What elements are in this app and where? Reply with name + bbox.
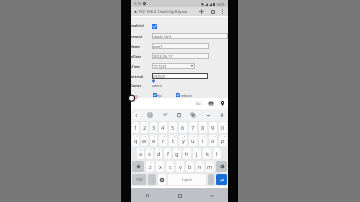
button[interactable]: Voice input	[218, 109, 226, 121]
button[interactable]: s	[146, 148, 153, 159]
button[interactable]: 9	[209, 122, 217, 133]
staticText: y	[182, 137, 185, 145]
staticText: 6	[184, 135, 186, 138]
button[interactable]: n	[196, 161, 204, 172]
staticText: i	[202, 137, 204, 145]
button[interactable]: 17:1231	[152, 63, 195, 69]
button[interactable]: chodi_faj;ji	[152, 33, 228, 39]
staticText: admin	[152, 83, 163, 88]
button[interactable]: Recents	[131, 188, 164, 202]
button[interactable]: r	[159, 135, 167, 146]
button[interactable]: y	[179, 135, 187, 146]
button[interactable]: q	[132, 135, 139, 146]
staticText: x	[159, 163, 162, 171]
staticText: g	[175, 150, 179, 158]
button[interactable]: u	[189, 135, 197, 146]
button[interactable]: Payment methods	[207, 98, 215, 109]
staticText: _	[168, 148, 170, 151]
staticText: ?	[212, 161, 213, 164]
button[interactable]: Translate	[189, 109, 197, 121]
staticText: 8	[204, 135, 206, 138]
button[interactable]: Clipboard	[175, 109, 183, 121]
staticText: q	[134, 137, 138, 145]
staticText: ;	[192, 161, 193, 164]
staticText: 17:1231	[153, 64, 167, 69]
staticText: w	[142, 137, 147, 145]
button[interactable]: More tools	[204, 109, 212, 121]
button[interactable]: z	[146, 161, 154, 172]
button[interactable]: Glu	[196, 98, 201, 109]
button[interactable]: 0	[219, 122, 227, 133]
staticText: sTime	[131, 64, 141, 69]
button[interactable]: t	[169, 135, 177, 146]
button[interactable]: l	[213, 148, 221, 159]
button[interactable]: Enter	[216, 174, 227, 185]
button[interactable]: ,	[148, 174, 156, 185]
staticText: @	[140, 148, 143, 151]
button[interactable]: d	[155, 148, 162, 159]
staticText: 5	[174, 135, 176, 138]
button[interactable]: Emoji	[158, 174, 166, 185]
button[interactable]: 2023-06-17	[152, 53, 209, 59]
button[interactable]: New tab	[196, 7, 207, 16]
button[interactable]: .	[208, 174, 214, 185]
button[interactable]: user1	[152, 43, 209, 49]
button[interactable]: a	[137, 148, 144, 159]
button[interactable]: ftp	[153, 93, 157, 97]
button[interactable]: enabled	[152, 24, 157, 29]
button[interactable]: reboot	[176, 93, 180, 97]
button[interactable]: g	[173, 148, 181, 159]
staticText: f	[167, 150, 169, 158]
button[interactable]: x	[156, 161, 164, 172]
staticText: 0	[224, 135, 226, 138]
button[interactable]: k	[203, 148, 211, 159]
button[interactable]: 7	[189, 122, 197, 133]
button[interactable]: Shift	[132, 161, 144, 172]
button[interactable]: 3	[150, 122, 157, 133]
staticText: !	[202, 161, 203, 164]
staticText: ,	[152, 177, 153, 182]
button[interactable]: Expand toolbar	[133, 112, 140, 119]
staticText: 3	[152, 124, 156, 132]
button[interactable]: w	[141, 135, 148, 146]
button[interactable]: Backspace	[216, 161, 227, 172]
staticText: *	[151, 161, 153, 164]
button[interactable]: GIF	[161, 109, 169, 121]
button[interactable]: 8	[199, 122, 207, 133]
button[interactable]: 4	[159, 122, 167, 133]
staticText: enabled	[131, 23, 144, 28]
staticText: #	[150, 148, 152, 151]
button[interactable]: 1	[132, 122, 139, 133]
button[interactable]: HI3500	[152, 73, 208, 79]
staticText: :	[182, 161, 183, 164]
button[interactable]: More options	[218, 7, 227, 16]
button[interactable]: Addresses	[218, 98, 226, 109]
button[interactable]: 2	[141, 122, 148, 133]
button[interactable]: ?123	[132, 174, 146, 185]
button[interactable]: c	[166, 161, 174, 172]
button[interactable]: Stickers	[146, 109, 154, 121]
staticText: $	[159, 148, 161, 151]
button[interactable]: j	[193, 148, 201, 159]
staticText: chodi_faj;ji	[153, 34, 172, 39]
button[interactable]: e	[150, 135, 157, 146]
button[interactable]: h	[183, 148, 191, 159]
button[interactable]: m	[206, 161, 214, 172]
button[interactable]: v	[176, 161, 184, 172]
button[interactable]: English	[168, 174, 206, 185]
button[interactable]: 5	[169, 122, 177, 133]
button[interactable]: Home	[164, 188, 196, 202]
staticText: Name	[131, 44, 141, 49]
staticText: Owner	[131, 83, 142, 88]
button[interactable]: 6	[179, 122, 187, 133]
button[interactable]: b	[186, 161, 194, 172]
staticText: d	[157, 150, 161, 158]
button[interactable]: Tabs	[207, 7, 218, 16]
button[interactable]: f	[164, 148, 171, 159]
button[interactable]: Back	[196, 188, 228, 202]
staticText: 192.168.0.1/wificfg/#Syste	[138, 9, 196, 14]
button[interactable]: p	[219, 135, 227, 146]
staticText: 1	[136, 135, 138, 138]
button[interactable]: o	[209, 135, 217, 146]
button[interactable]: i	[199, 135, 207, 146]
